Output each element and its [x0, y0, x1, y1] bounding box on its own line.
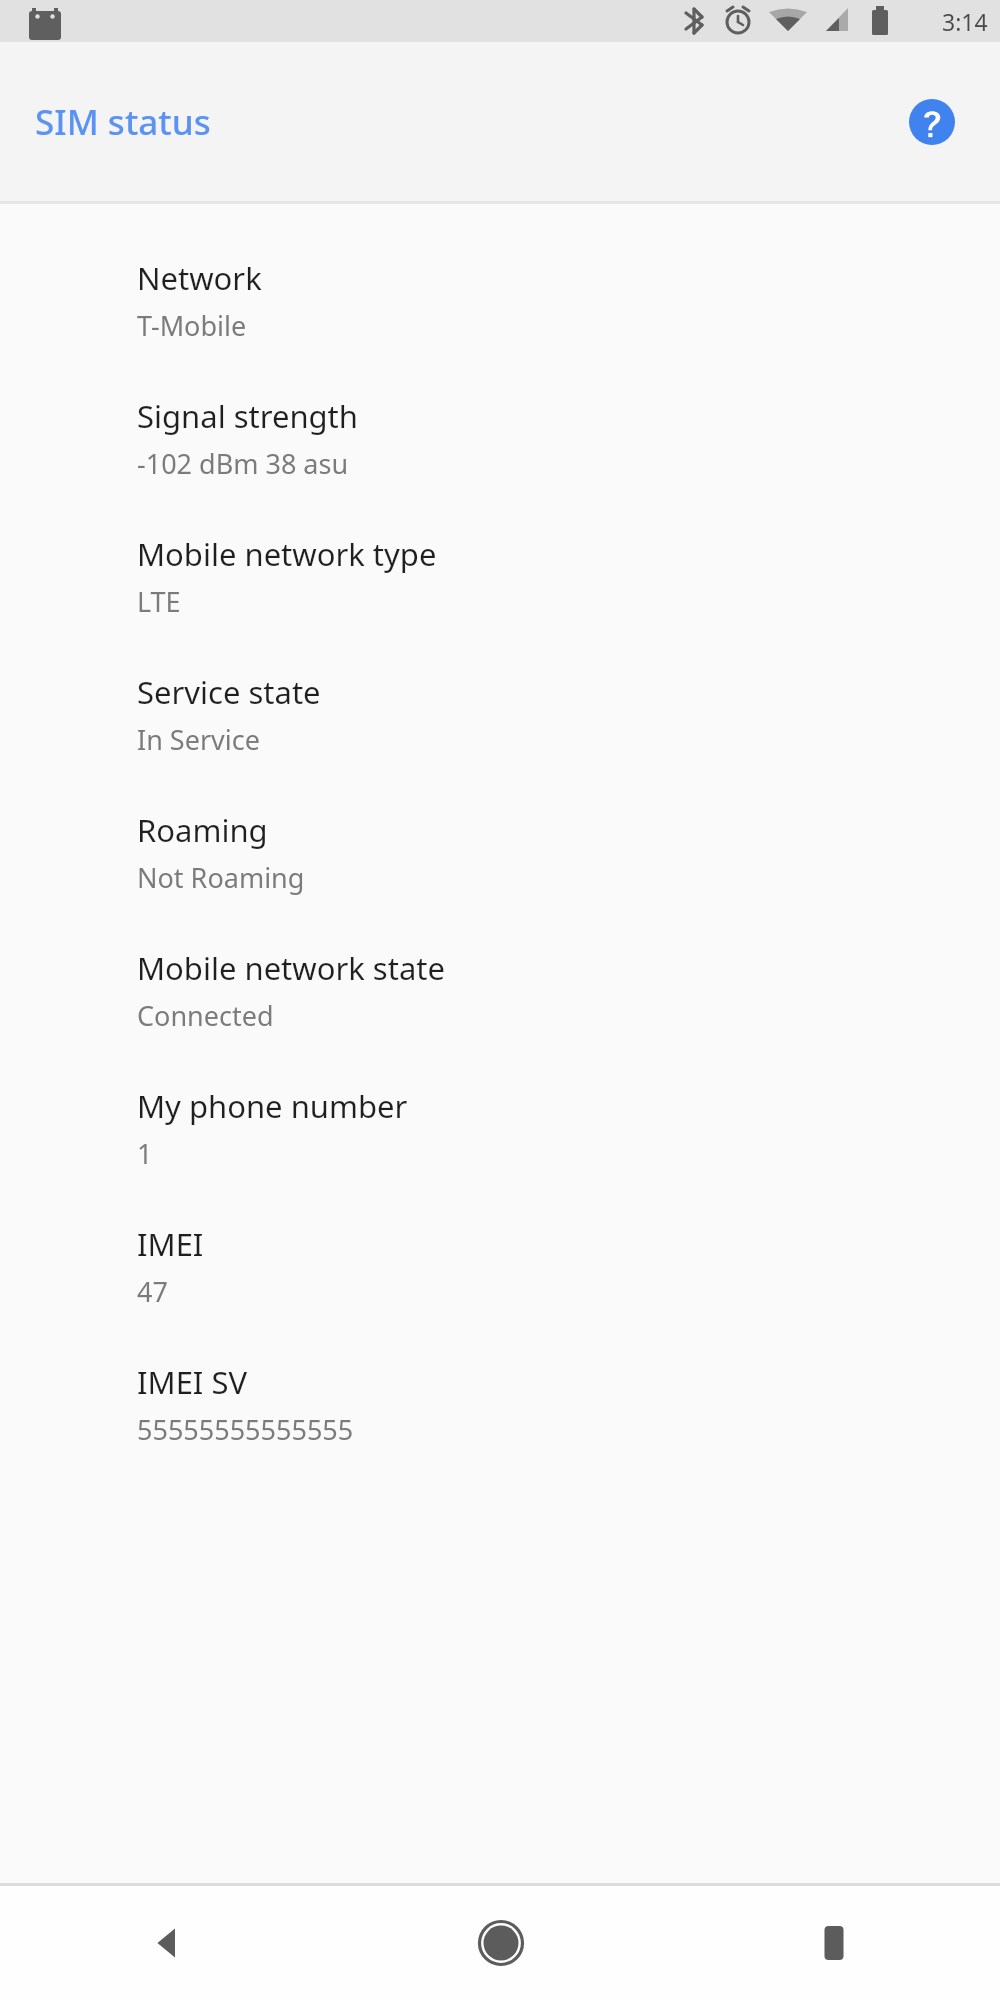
staticText: Mobile network type	[137, 533, 437, 575]
button[interactable]: Help	[902, 92, 962, 152]
button[interactable]: Recent apps	[667, 1886, 1000, 2000]
button[interactable]: Roaming	[0, 769, 1000, 907]
staticText: In Service	[137, 721, 260, 758]
staticText: Connected	[137, 997, 274, 1034]
button[interactable]: Back	[0, 1886, 334, 2000]
button[interactable]: IMEI SV	[0, 1321, 1000, 1459]
staticText: Service state	[137, 671, 321, 713]
button[interactable]: Network	[0, 217, 1000, 355]
staticText: 47	[137, 1273, 168, 1310]
button[interactable]: Signal strength	[0, 355, 1000, 493]
staticText: IMEI	[137, 1223, 204, 1265]
staticText: -102 dBm 38 asu	[137, 445, 349, 482]
staticText: T-Mobile	[137, 307, 247, 344]
staticText: Signal strength	[137, 395, 358, 437]
button[interactable]: Service state	[0, 631, 1000, 769]
staticText: SIM status	[35, 98, 211, 146]
staticText: Not Roaming	[137, 859, 305, 896]
staticText: Network	[137, 257, 262, 299]
button[interactable]: IMEI	[0, 1183, 1000, 1321]
staticText: 3:14	[942, 6, 988, 37]
button[interactable]: Home	[334, 1886, 667, 2000]
staticText: Mobile network state	[137, 947, 445, 989]
button[interactable]: Mobile network type	[0, 493, 1000, 631]
staticText: 55555555555555	[137, 1411, 354, 1448]
staticText: 1	[137, 1135, 153, 1172]
staticText: IMEI SV	[137, 1361, 248, 1403]
button[interactable]: My phone number	[0, 1045, 1000, 1183]
staticText: Roaming	[137, 809, 268, 851]
button[interactable]: Mobile network state	[0, 907, 1000, 1045]
staticText: LTE	[137, 583, 181, 620]
staticText: My phone number	[137, 1085, 408, 1127]
